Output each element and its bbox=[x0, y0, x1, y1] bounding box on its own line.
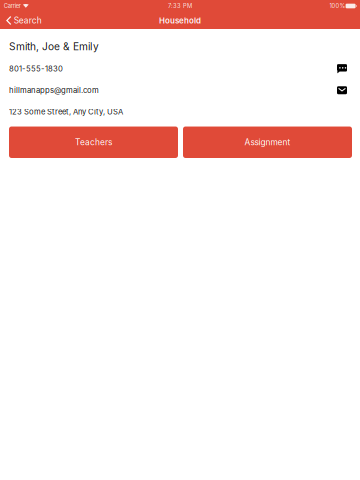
staticText: Assignment bbox=[244, 137, 290, 147]
staticText: hillmanapps@gmail.com bbox=[9, 86, 99, 95]
staticText: 123 Some Street, Any City, USA bbox=[9, 107, 123, 116]
staticText: 7:33 PM bbox=[168, 2, 192, 9]
staticText: Carrier bbox=[4, 2, 21, 9]
button[interactable]: Send message bbox=[337, 64, 347, 73]
button[interactable]: Teachers bbox=[9, 126, 178, 158]
staticText: Teachers bbox=[75, 137, 112, 147]
button[interactable]: Assignment bbox=[183, 126, 352, 158]
staticText: Search bbox=[14, 15, 42, 26]
staticText: Smith, Joe & Emily bbox=[9, 40, 99, 53]
button[interactable]: Search bbox=[0, 11, 48, 29]
staticText: 801-555-1830 bbox=[9, 64, 63, 73]
staticText: 100% bbox=[329, 2, 345, 9]
button[interactable]: Send email bbox=[337, 86, 347, 94]
staticText: Household bbox=[159, 16, 201, 25]
